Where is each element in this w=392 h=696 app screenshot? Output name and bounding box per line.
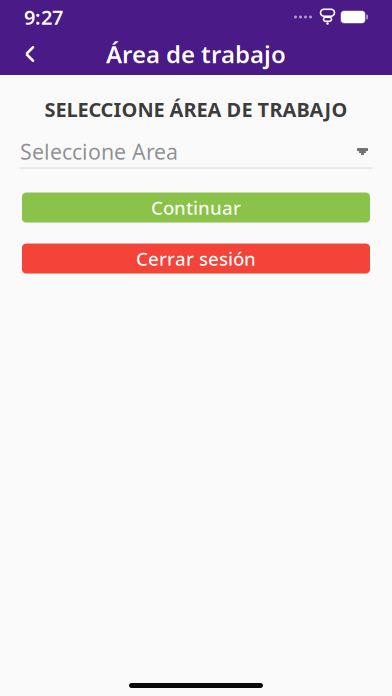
button[interactable]: Cerrar sesión [22,244,370,274]
staticText: Seleccione Area [20,137,178,166]
staticText: Continuar [151,195,241,220]
button[interactable]: Continuar [22,193,370,223]
staticText: 9:27 [24,4,63,30]
staticText: Cerrar sesión [136,246,256,271]
button[interactable]: Back [8,34,52,74]
staticText: SELECCIONE ÁREA DE TRABAJO [44,96,347,123]
button[interactable]: Seleccione Area [0,139,392,169]
staticText: Área de trabajo [106,38,286,70]
